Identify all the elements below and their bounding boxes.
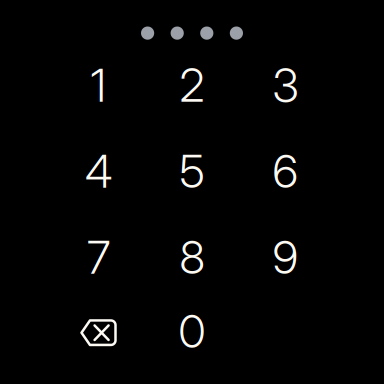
button[interactable]: 6 <box>239 128 332 214</box>
button[interactable]: 2 <box>145 42 239 128</box>
staticText: 3 <box>272 58 298 113</box>
staticText: 1 <box>90 58 106 113</box>
button[interactable]: 7 <box>52 214 145 300</box>
staticText: 4 <box>85 144 112 199</box>
staticText: 7 <box>87 230 110 285</box>
button[interactable]: 8 <box>145 214 239 300</box>
staticText: 8 <box>179 230 204 285</box>
staticText: 2 <box>179 58 204 113</box>
button[interactable]: 0 <box>145 288 239 374</box>
button[interactable]: 9 <box>239 214 332 300</box>
staticText: 5 <box>179 144 204 199</box>
button[interactable]: 1 <box>52 42 145 128</box>
staticText: 6 <box>272 144 298 199</box>
button[interactable]: 4 <box>52 128 145 214</box>
staticText: 0 <box>178 304 205 359</box>
staticText: 9 <box>272 230 298 285</box>
button[interactable]: 5 <box>145 128 239 214</box>
button[interactable]: 3 <box>239 42 332 128</box>
button[interactable]: Delete <box>52 288 145 374</box>
